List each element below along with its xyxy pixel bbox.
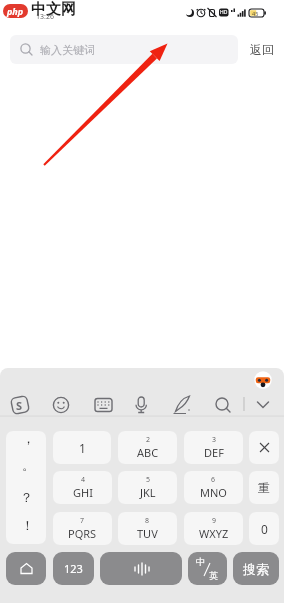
- staticText: 。: [22, 457, 35, 473]
- button[interactable]: [252, 394, 274, 416]
- staticText: php: [7, 5, 24, 17]
- staticText: 返回: [250, 42, 274, 57]
- button[interactable]: [130, 394, 152, 416]
- button[interactable]: 5: [118, 471, 177, 504]
- staticText: ，: [22, 431, 35, 446]
- button[interactable]: [254, 371, 272, 389]
- button[interactable]: 123: [53, 552, 94, 585]
- staticText: 中文网: [31, 0, 76, 19]
- button[interactable]: 7: [53, 512, 112, 545]
- staticText: 搜索: [243, 561, 269, 577]
- button[interactable]: [92, 394, 114, 416]
- staticText: 重: [258, 480, 270, 495]
- button[interactable]: 中: [188, 552, 227, 585]
- button[interactable]: 1: [53, 431, 111, 464]
- button[interactable]: ，: [6, 431, 46, 544]
- staticText: 13:26: [36, 12, 54, 22]
- staticText: 6: [211, 475, 216, 485]
- staticText: MNO: [200, 485, 227, 500]
- staticText: TUV: [137, 526, 158, 541]
- staticText: 中: [196, 556, 205, 567]
- staticText: ！: [21, 517, 34, 533]
- button[interactable]: 2: [118, 431, 177, 464]
- button[interactable]: [6, 552, 46, 585]
- button[interactable]: 重: [249, 471, 279, 504]
- button[interactable]: 0: [249, 512, 279, 545]
- staticText: PQRS: [68, 526, 97, 541]
- staticText: WXYZ: [199, 526, 229, 541]
- staticText: 3: [212, 435, 217, 445]
- button[interactable]: [211, 394, 233, 416]
- button[interactable]: 返回: [244, 35, 280, 64]
- staticText: 7: [80, 516, 85, 526]
- button[interactable]: [249, 431, 279, 464]
- button[interactable]: 4: [53, 471, 112, 504]
- staticText: 9: [212, 516, 217, 526]
- staticText: 123: [64, 561, 83, 576]
- button[interactable]: 搜索: [233, 552, 279, 585]
- staticText: 2: [146, 435, 151, 445]
- staticText: DEF: [204, 445, 224, 460]
- button[interactable]: [100, 552, 182, 585]
- staticText: 输入关键词: [40, 43, 95, 57]
- staticText: 5: [146, 475, 151, 485]
- button[interactable]: 3: [184, 431, 243, 464]
- staticText: HD: [220, 9, 228, 16]
- staticText: 4: [81, 475, 86, 485]
- staticText: ABC: [137, 445, 159, 460]
- button[interactable]: 输入关键词: [10, 35, 238, 64]
- staticText: 8: [145, 516, 150, 526]
- staticText: 45: [252, 10, 259, 17]
- staticText: 1: [79, 440, 86, 456]
- staticText: S: [16, 398, 23, 413]
- button[interactable]: 6: [184, 471, 243, 504]
- staticText: 英: [209, 570, 218, 581]
- button[interactable]: 8: [118, 512, 177, 545]
- button[interactable]: [171, 394, 193, 416]
- staticText: 0: [261, 521, 268, 537]
- button[interactable]: [50, 394, 72, 416]
- staticText: ？: [20, 489, 33, 505]
- staticText: GHI: [73, 485, 93, 500]
- button[interactable]: [9, 394, 31, 416]
- staticText: JKL: [140, 485, 156, 500]
- button[interactable]: 9: [184, 512, 243, 545]
